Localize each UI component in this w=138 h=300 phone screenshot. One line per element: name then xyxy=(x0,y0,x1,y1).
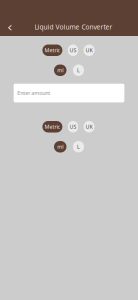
staticText: Metric xyxy=(44,47,60,54)
staticText: UK xyxy=(86,123,93,130)
button[interactable]: L xyxy=(73,64,84,76)
staticText: L xyxy=(77,143,80,150)
staticText: Liquid Volume Converter xyxy=(34,23,112,31)
button[interactable]: Enter amount xyxy=(13,83,125,103)
staticText: US xyxy=(69,123,76,130)
button[interactable]: Metric xyxy=(42,121,62,132)
staticText: ml xyxy=(57,67,63,74)
staticText: UK xyxy=(86,47,93,54)
button[interactable]: Metric xyxy=(42,44,62,56)
button[interactable]: UK xyxy=(84,44,95,56)
staticText: L xyxy=(77,67,80,74)
button[interactable]: Back xyxy=(0,18,18,36)
button[interactable]: US xyxy=(68,44,78,56)
staticText: ml xyxy=(57,143,63,150)
button[interactable]: L xyxy=(73,141,84,152)
staticText: Enter amount xyxy=(17,89,50,97)
button[interactable]: US xyxy=(68,121,78,132)
button[interactable]: ml xyxy=(54,141,66,152)
button[interactable]: ml xyxy=(54,64,66,76)
staticText: US xyxy=(69,47,76,54)
button[interactable]: UK xyxy=(84,121,95,132)
staticText: Metric xyxy=(44,123,60,130)
